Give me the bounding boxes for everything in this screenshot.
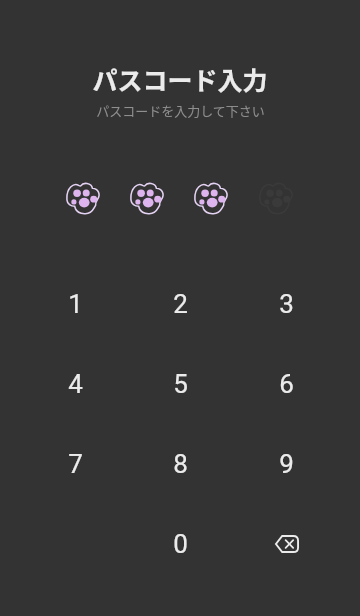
button[interactable]: 5	[140, 352, 220, 416]
button[interactable]: 6	[246, 352, 326, 416]
other: Backspace	[275, 535, 299, 553]
button[interactable]: 2	[140, 272, 220, 336]
button[interactable]: 9	[246, 432, 326, 496]
button[interactable]: 4	[35, 352, 115, 416]
staticText: 5	[173, 369, 188, 399]
staticText: パスコードを入力して下さい	[96, 101, 265, 120]
button[interactable]: 3	[246, 272, 326, 336]
staticText: 0	[173, 529, 188, 559]
staticText: 1	[68, 289, 83, 319]
button[interactable]: 1	[35, 272, 115, 336]
button[interactable]: 8	[140, 432, 220, 496]
staticText: 8	[173, 449, 188, 479]
staticText: 3	[279, 289, 294, 319]
staticText: パスコード入力	[92, 61, 268, 97]
staticText: 9	[279, 449, 294, 479]
staticText: 6	[279, 369, 294, 399]
staticText: 4	[68, 369, 83, 399]
button[interactable]: Backspace	[246, 512, 326, 576]
staticText: 7	[68, 449, 83, 479]
button[interactable]: 0	[140, 512, 220, 576]
button[interactable]: 7	[35, 432, 115, 496]
staticText: 2	[173, 289, 188, 319]
